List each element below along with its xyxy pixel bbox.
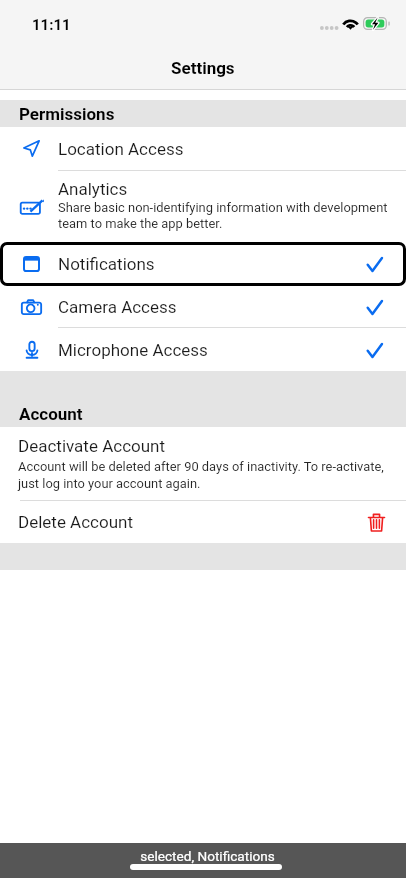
staticText: Camera Access bbox=[58, 297, 177, 317]
staticText: Location Access bbox=[58, 139, 184, 159]
other: Delete Account bbox=[368, 513, 385, 532]
other: Analytics bbox=[20, 199, 44, 215]
other: Location Access bbox=[23, 140, 40, 157]
staticText: Deactivate Account bbox=[18, 436, 166, 456]
staticText: selected, Notifications bbox=[140, 848, 275, 864]
button[interactable]: Delete Account bbox=[0, 501, 406, 543]
button[interactable]: Microphone Access bbox=[0, 328, 406, 371]
staticText: Delete Account bbox=[18, 512, 134, 532]
button[interactable]: Location Access bbox=[0, 127, 406, 170]
button[interactable]: Notifications bbox=[0, 242, 406, 286]
staticText: Analytics bbox=[58, 179, 128, 199]
other: Microphone Access bbox=[26, 341, 38, 359]
staticText: Notifications bbox=[58, 254, 155, 274]
staticText: 11:11 bbox=[32, 16, 71, 34]
other: Notifications bbox=[23, 256, 40, 272]
staticText: Permissions bbox=[19, 104, 115, 124]
button[interactable]: Camera Access bbox=[0, 286, 406, 327]
other: Camera Access bbox=[21, 299, 42, 315]
staticText: Account will be deleted after 90 days of… bbox=[18, 459, 388, 492]
staticText: Share basic non-identifying information … bbox=[58, 200, 388, 231]
button[interactable]: Analytics bbox=[0, 171, 406, 242]
staticText: Settings bbox=[171, 58, 235, 78]
staticText: Account bbox=[19, 404, 83, 424]
button[interactable]: Deactivate Account bbox=[0, 427, 406, 500]
staticText: Microphone Access bbox=[58, 340, 208, 360]
